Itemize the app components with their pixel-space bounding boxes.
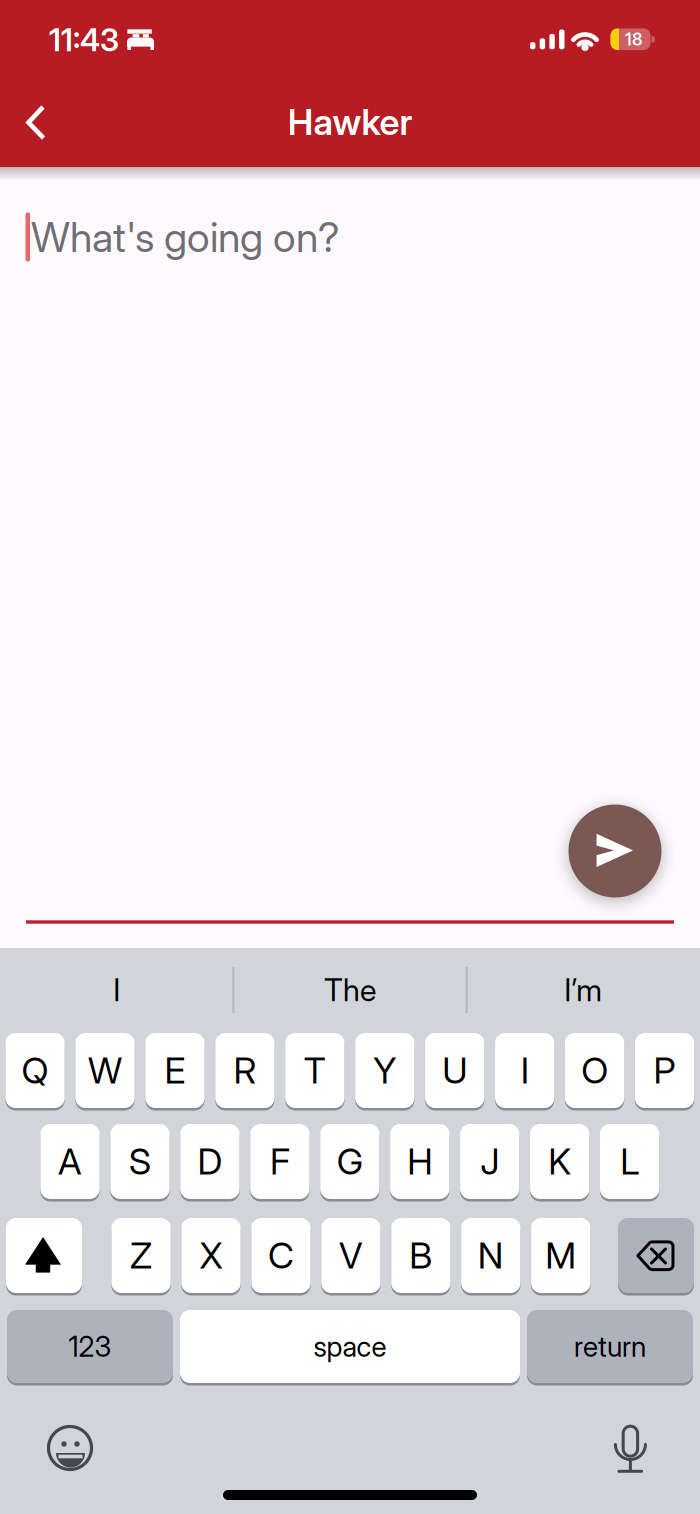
button[interactable]: S (110, 1122, 170, 1200)
staticText: J (480, 1140, 499, 1183)
staticText: return (574, 1330, 646, 1363)
staticText: space (313, 1330, 386, 1363)
button[interactable]: return (527, 1308, 693, 1384)
button[interactable]: The (240, 960, 460, 1020)
button[interactable]: Y (355, 1031, 414, 1109)
staticText: U (442, 1049, 467, 1092)
staticText: K (548, 1140, 571, 1183)
button[interactable]: M (531, 1216, 590, 1294)
staticText: W (88, 1049, 122, 1092)
button[interactable]: I (495, 1031, 554, 1109)
button[interactable]: X (181, 1216, 241, 1294)
staticText: I (113, 971, 120, 1008)
button[interactable]: F (250, 1122, 309, 1200)
button[interactable]: Back (12, 102, 60, 142)
staticText: R (233, 1049, 256, 1092)
staticText: Y (373, 1049, 396, 1092)
button[interactable]: U (425, 1031, 484, 1109)
staticText: H (407, 1140, 432, 1183)
staticText: What's going on? (31, 212, 339, 262)
staticText: S (129, 1140, 151, 1183)
staticText: T (304, 1049, 326, 1092)
staticText: E (164, 1049, 185, 1092)
button[interactable]: H (390, 1122, 449, 1200)
button[interactable]: 123 (7, 1308, 173, 1384)
staticText: O (581, 1049, 608, 1092)
button[interactable]: K (530, 1122, 589, 1200)
button[interactable]: Delete (618, 1216, 694, 1294)
staticText: F (270, 1140, 290, 1183)
staticText: C (268, 1234, 294, 1277)
button[interactable]: Q (5, 1031, 65, 1109)
button[interactable]: Dictate (600, 1418, 660, 1478)
button[interactable]: Emoji (40, 1418, 100, 1478)
button[interactable]: I’m (473, 960, 693, 1020)
button[interactable]: G (320, 1122, 379, 1200)
staticText: P (654, 1049, 676, 1092)
staticText: L (620, 1140, 639, 1183)
staticText: M (545, 1234, 576, 1277)
button[interactable]: space (180, 1308, 520, 1384)
staticText: A (58, 1140, 82, 1183)
button[interactable]: Shift (6, 1216, 82, 1294)
staticText: 123 (68, 1330, 111, 1363)
button[interactable]: I (7, 960, 227, 1020)
button[interactable]: V (321, 1216, 381, 1294)
button[interactable]: W (75, 1031, 135, 1109)
staticText: 18 (625, 29, 642, 50)
staticText: X (199, 1234, 222, 1277)
button[interactable]: P (635, 1031, 694, 1109)
staticText: The (324, 971, 376, 1008)
button[interactable]: R (215, 1031, 275, 1109)
button[interactable]: O (565, 1031, 624, 1109)
button[interactable]: Z (111, 1216, 171, 1294)
staticText: I (521, 1049, 529, 1092)
button[interactable]: C (251, 1216, 311, 1294)
staticText: Hawker (287, 100, 412, 144)
button[interactable]: T (285, 1031, 344, 1109)
button[interactable]: J (460, 1122, 519, 1200)
button[interactable]: E (145, 1031, 205, 1109)
staticText: D (197, 1140, 222, 1183)
staticText: G (337, 1140, 363, 1183)
button[interactable]: B (391, 1216, 450, 1294)
staticText: B (409, 1234, 432, 1277)
staticText: Q (21, 1049, 48, 1092)
button[interactable]: A (40, 1122, 100, 1200)
button[interactable]: Send (568, 804, 661, 897)
staticText: V (339, 1234, 363, 1277)
button[interactable]: N (461, 1216, 520, 1294)
staticText: N (478, 1234, 504, 1277)
staticText: I’m (564, 971, 602, 1008)
staticText: 11:43 (49, 21, 119, 59)
staticText: Z (130, 1234, 152, 1277)
button[interactable]: D (180, 1122, 240, 1200)
button[interactable]: L (600, 1122, 659, 1200)
